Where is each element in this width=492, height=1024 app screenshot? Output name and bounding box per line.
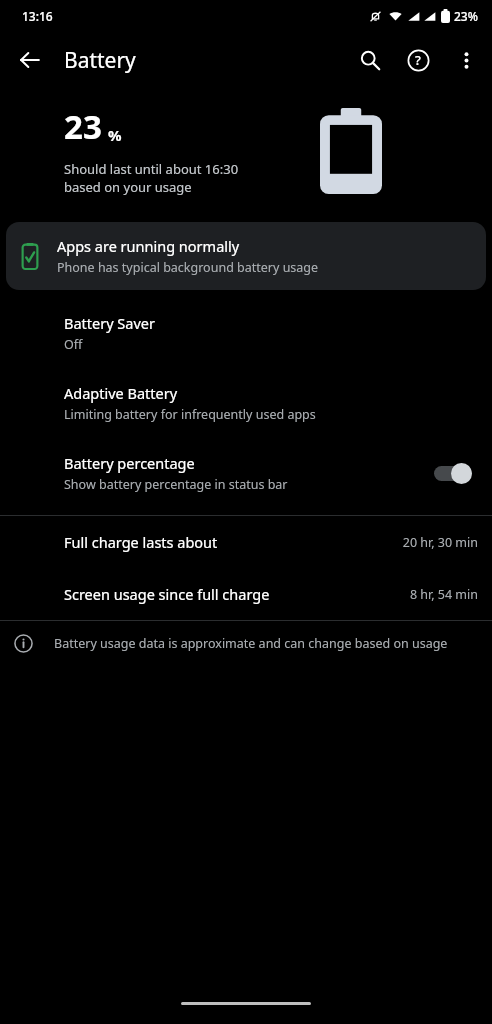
staticText: 13:16: [22, 8, 53, 24]
button[interactable]: Apps are running normally: [6, 222, 486, 290]
button[interactable]: Full charge lasts about: [0, 516, 492, 568]
staticText: Limiting battery for infrequently used a…: [64, 406, 316, 423]
staticText: 20 hr, 30 min: [402, 534, 478, 551]
staticText: Battery Saver: [64, 313, 155, 333]
staticText: Show battery percentage in status bar: [64, 476, 288, 493]
button[interactable]: Battery Saver: [0, 298, 492, 368]
staticText: Battery usage data is approximate and ca…: [54, 635, 448, 652]
staticText: Full charge lasts about: [64, 532, 402, 552]
button[interactable]: Screen usage since full charge: [0, 568, 492, 620]
button[interactable]: Adaptive Battery: [0, 368, 492, 438]
button[interactable]: Battery percentage: [0, 438, 492, 508]
staticText: Battery percentage: [64, 453, 195, 473]
staticText: 23%: [454, 8, 478, 24]
staticText: 8 hr, 54 min: [409, 586, 478, 603]
staticText: Battery: [64, 46, 136, 75]
staticText: based on your usage: [64, 178, 192, 196]
staticText: Apps are running normally: [57, 236, 240, 256]
button[interactable]: Back: [6, 36, 54, 84]
staticText: Should last until about 16:30: [64, 160, 239, 178]
staticText: %: [108, 125, 122, 145]
staticText: Screen usage since full charge: [64, 584, 409, 604]
staticText: Phone has typical background battery usa…: [57, 259, 319, 276]
staticText: ?: [415, 51, 421, 69]
button[interactable]: More options: [442, 36, 490, 84]
button[interactable]: Search: [346, 36, 394, 84]
button[interactable]: Battery percentage toggle: [434, 463, 472, 484]
staticText: Adaptive Battery: [64, 383, 178, 403]
staticText: 23: [64, 104, 102, 149]
staticText: Off: [64, 336, 83, 353]
button[interactable]: Help: [394, 36, 442, 84]
